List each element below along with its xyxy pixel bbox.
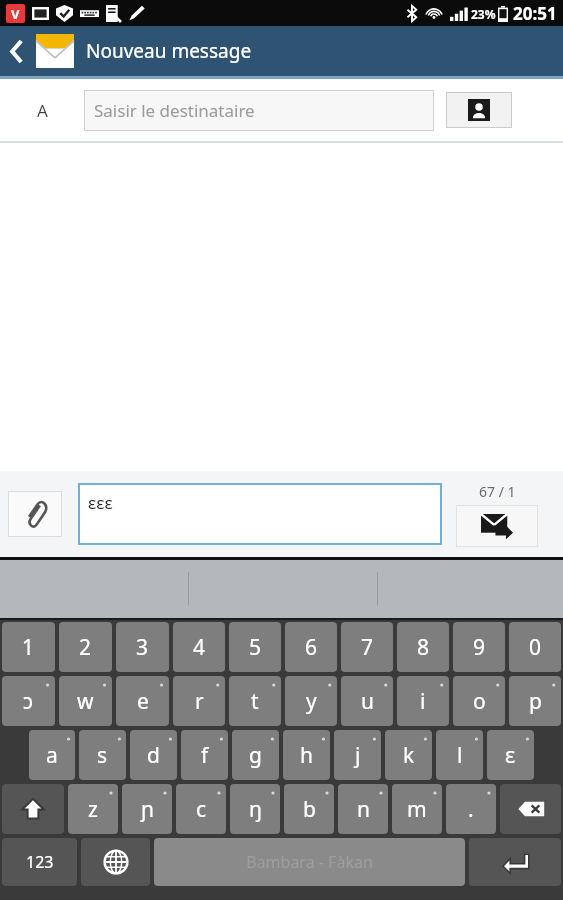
button[interactable]: 3	[116, 622, 169, 672]
staticText: 0	[529, 633, 542, 662]
button[interactable]: k	[385, 730, 432, 780]
button[interactable]: y	[285, 676, 337, 726]
button[interactable]: ɛɛɛ	[78, 483, 442, 545]
staticText: i	[420, 687, 426, 716]
staticText: h	[300, 741, 313, 770]
button[interactable]: ɔ	[2, 676, 55, 726]
button[interactable]: 1	[2, 622, 55, 672]
staticText: 3	[136, 633, 149, 662]
button[interactable]: f	[181, 730, 228, 780]
button[interactable]: n	[338, 784, 388, 834]
button[interactable]: Enter	[469, 838, 561, 886]
button[interactable]: e	[116, 676, 169, 726]
staticText: d	[147, 741, 160, 770]
button[interactable]: Send message	[456, 505, 538, 547]
button[interactable]: s	[79, 730, 126, 780]
staticText: .	[468, 795, 474, 824]
button[interactable]: 0	[509, 622, 561, 672]
staticText: 1	[22, 633, 35, 662]
button[interactable]: 123	[2, 838, 77, 886]
staticText: t	[251, 687, 259, 716]
staticText: p	[529, 687, 542, 716]
button[interactable]: t	[229, 676, 281, 726]
button[interactable]: i	[397, 676, 449, 726]
staticText: ɔ	[23, 687, 34, 716]
button[interactable]: w	[59, 676, 112, 726]
staticText: o	[473, 687, 486, 716]
staticText: f	[201, 741, 209, 770]
button[interactable]: a	[29, 730, 75, 780]
staticText: Bambara - Fàkan	[246, 851, 373, 873]
staticText: ŋ	[249, 795, 262, 824]
button[interactable]: Choose contact	[446, 92, 512, 128]
button[interactable]: b	[284, 784, 334, 834]
button[interactable]: ɛ	[487, 730, 534, 780]
button[interactable]: r	[173, 676, 225, 726]
staticText: 8	[417, 633, 430, 662]
button[interactable]: c	[176, 784, 226, 834]
staticText: k	[403, 741, 415, 770]
staticText: ɲ	[141, 795, 154, 824]
button[interactable]: o	[453, 676, 505, 726]
staticText: y	[306, 687, 317, 716]
staticText: Saisir le destinataire	[94, 99, 255, 122]
button[interactable]: g	[232, 730, 279, 780]
button[interactable]: 8	[397, 622, 449, 672]
button[interactable]: 2	[59, 622, 112, 672]
button[interactable]: Attach	[8, 491, 62, 537]
staticText: 4	[193, 633, 206, 662]
staticText: c	[196, 795, 207, 824]
staticText: 67 / 1	[479, 482, 516, 501]
staticText: 9	[473, 633, 486, 662]
button[interactable]: u	[341, 676, 393, 726]
button[interactable]: Shift	[2, 784, 64, 834]
staticText: a	[46, 741, 58, 770]
staticText: 23%	[471, 6, 496, 22]
staticText: 7	[361, 633, 374, 662]
button[interactable]: .	[446, 784, 496, 834]
button[interactable]: ŋ	[230, 784, 280, 834]
button[interactable]: ɲ	[122, 784, 172, 834]
staticText: ɛɛɛ	[88, 491, 113, 514]
staticText: l	[457, 741, 463, 770]
button[interactable]: l	[436, 730, 483, 780]
staticText: 2	[79, 633, 92, 662]
button[interactable]: Bambara - Fàkan	[154, 838, 465, 886]
button[interactable]: Back	[0, 26, 34, 76]
button[interactable]: p	[509, 676, 561, 726]
staticText: 20:51	[513, 2, 557, 25]
staticText: m	[407, 795, 427, 824]
staticText: b	[303, 795, 316, 824]
staticText: r	[195, 687, 204, 716]
staticText: A	[37, 99, 48, 122]
button[interactable]: 9	[453, 622, 505, 672]
staticText: z	[88, 795, 98, 824]
staticText: s	[97, 741, 108, 770]
staticText: u	[361, 687, 374, 716]
staticText: 6	[305, 633, 318, 662]
button[interactable]: z	[68, 784, 118, 834]
staticText: j	[355, 741, 361, 770]
button[interactable]: Backspace	[500, 784, 561, 834]
button[interactable]: Saisir le destinataire	[84, 90, 434, 131]
button[interactable]: Change language	[81, 838, 150, 886]
button[interactable]: 6	[285, 622, 337, 672]
staticText: w	[77, 687, 94, 716]
button[interactable]: j	[334, 730, 381, 780]
button[interactable]: 7	[341, 622, 393, 672]
staticText: ɛ	[505, 741, 516, 770]
button[interactable]: 5	[229, 622, 281, 672]
staticText: 123	[26, 851, 54, 873]
button[interactable]: h	[283, 730, 330, 780]
staticText: 5	[249, 633, 262, 662]
staticText: g	[249, 741, 262, 770]
button[interactable]: d	[130, 730, 177, 780]
button[interactable]: 4	[173, 622, 225, 672]
staticText: e	[137, 687, 149, 716]
staticText: n	[357, 795, 370, 824]
staticText: V	[11, 5, 20, 23]
button[interactable]: m	[392, 784, 442, 834]
staticText: Nouveau message	[86, 38, 252, 64]
